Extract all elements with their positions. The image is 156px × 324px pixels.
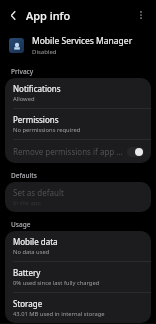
staticText: Mobile data xyxy=(13,236,58,247)
staticText: Battery xyxy=(13,267,41,278)
staticText: No permissions required xyxy=(13,126,81,134)
staticText: Storage xyxy=(13,298,43,309)
staticText: Remove permissions if app is unused xyxy=(13,146,123,157)
staticText: In the app xyxy=(13,199,41,207)
staticText: Notifications xyxy=(13,83,61,94)
button[interactable]: Mobile data xyxy=(5,231,151,261)
button[interactable]: Remove permissions if app is unused xyxy=(5,140,151,163)
button[interactable]: Permissions xyxy=(5,109,151,139)
button[interactable]: Back xyxy=(0,2,26,28)
button[interactable]: Storage xyxy=(5,293,151,323)
staticText: 43.01 MB used in internal storage xyxy=(13,310,105,318)
staticText: Allowed xyxy=(13,95,35,103)
staticText: Set as default xyxy=(13,187,64,198)
staticText: Usage xyxy=(11,220,31,229)
staticText: No data used xyxy=(13,248,50,256)
button[interactable]: Notifications xyxy=(5,78,151,108)
button[interactable]: Mobile Services Manager xyxy=(0,30,156,60)
staticText: Defaults xyxy=(11,171,38,180)
staticText: Permissions xyxy=(13,114,59,125)
button[interactable]: Battery xyxy=(5,262,151,292)
staticText: 0% used since last fully charged xyxy=(13,279,100,287)
button[interactable]: More options xyxy=(128,2,154,28)
staticText: Mobile Services Manager xyxy=(32,35,133,47)
staticText: Disabled xyxy=(32,48,57,56)
staticText: App info xyxy=(26,8,71,23)
button[interactable]: Set as default xyxy=(5,182,151,212)
staticText: Privacy xyxy=(11,67,34,76)
